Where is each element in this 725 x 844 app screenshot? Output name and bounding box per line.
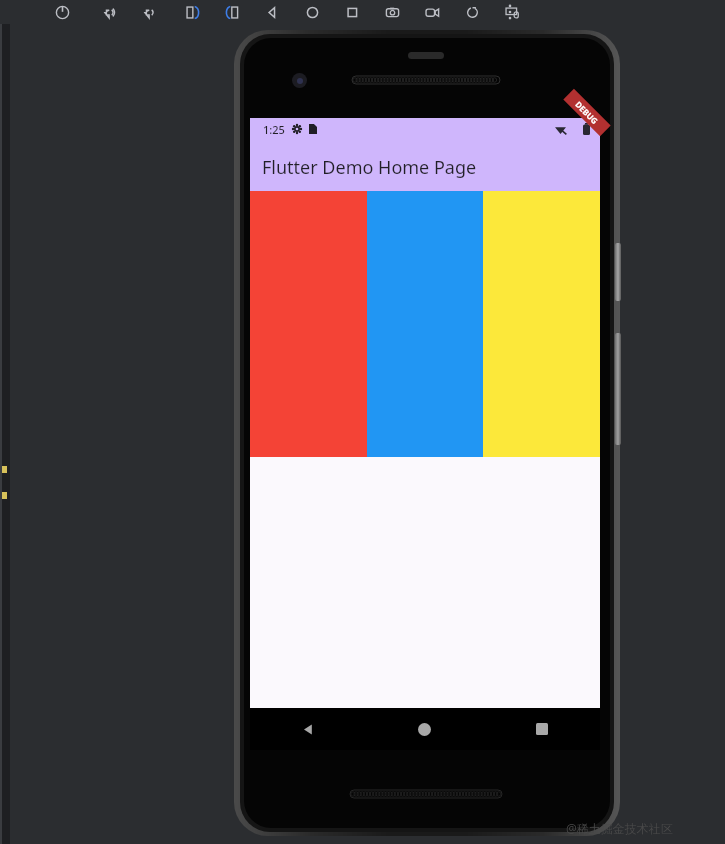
button[interactable]: Rotate right <box>221 0 243 24</box>
button[interactable]: Volume up <box>99 0 121 24</box>
staticText: Flutter Demo Home Page <box>262 155 477 180</box>
button[interactable]: Record screen <box>421 0 443 24</box>
button[interactable]: Rotate <box>461 0 483 24</box>
button[interactable]: Back <box>250 708 366 750</box>
button[interactable]: Screenshot <box>381 0 403 24</box>
button[interactable]: Overview <box>341 0 363 24</box>
button[interactable]: Rotate left <box>181 0 203 24</box>
staticText: 1:25 <box>263 122 285 137</box>
button[interactable]: Home <box>366 708 483 750</box>
button[interactable]: Recents <box>483 708 600 750</box>
staticText: @稀土掘金技术社区 <box>566 820 673 836</box>
staticText: DEBUG <box>573 99 601 126</box>
button[interactable]: Volume down <box>139 0 161 24</box>
button[interactable]: More <box>499 0 521 24</box>
button[interactable]: Back <box>261 0 283 24</box>
button[interactable]: Home <box>301 0 323 24</box>
button[interactable]: Input <box>501 0 523 24</box>
button[interactable]: Power <box>51 0 73 24</box>
